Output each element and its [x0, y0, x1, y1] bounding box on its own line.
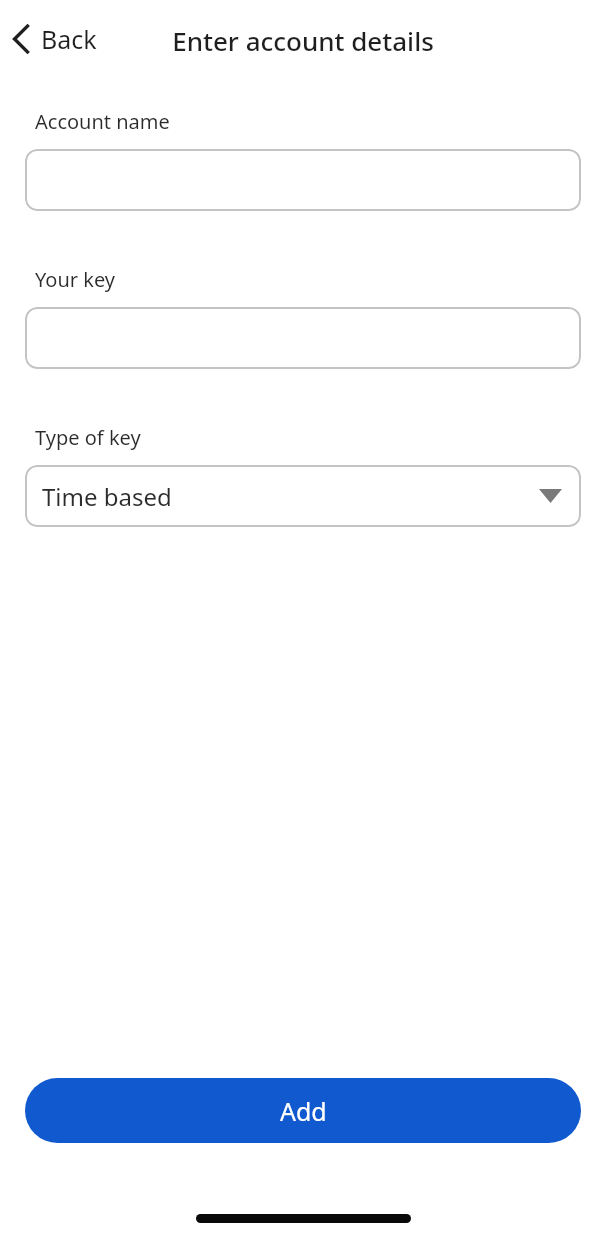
staticText: Time based [42, 480, 172, 513]
staticText: Back [41, 22, 97, 56]
button[interactable]: Time based [25, 465, 581, 527]
staticText: Add [280, 1094, 327, 1128]
staticText: Your key [35, 266, 115, 293]
staticText: Type of key [35, 424, 141, 451]
staticText: Account name [35, 108, 170, 135]
staticText: Enter account details [0, 23, 606, 58]
other: Open key type menu [539, 489, 562, 503]
button[interactable]: Back [6, 14, 107, 64]
button[interactable] [25, 307, 581, 369]
button[interactable] [25, 149, 581, 211]
button[interactable]: Add [25, 1078, 581, 1143]
